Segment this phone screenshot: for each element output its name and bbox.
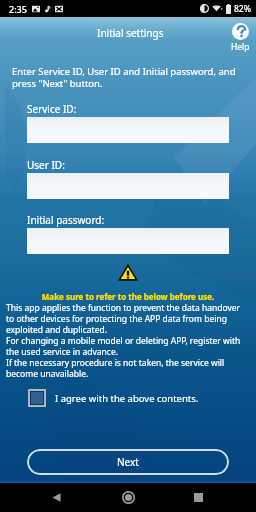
button[interactable]: Help (231, 23, 250, 52)
staticText: Enter Service ID, User ID and Initial pa… (12, 65, 252, 89)
staticText: Service ID: (27, 102, 77, 116)
staticText: Initial settings (97, 26, 164, 40)
staticText: 82% (234, 3, 251, 15)
button[interactable]: Recent apps (185, 484, 211, 510)
button[interactable]: Next (27, 449, 229, 475)
staticText: Help (231, 41, 250, 53)
staticText: This app applies the function to prevent… (6, 302, 256, 379)
staticText: 2:35 (9, 3, 27, 15)
button[interactable]: I agree with the above contents. (28, 389, 199, 407)
button[interactable]: Home (115, 484, 141, 510)
staticText: I agree with the above contents. (55, 392, 199, 405)
staticText: Make sure to refer to the below before u… (0, 291, 256, 302)
staticText: Initial password: (27, 213, 105, 227)
staticText: User ID: (27, 158, 65, 172)
button[interactable]: Back (43, 484, 69, 510)
staticText: Next (117, 455, 139, 469)
